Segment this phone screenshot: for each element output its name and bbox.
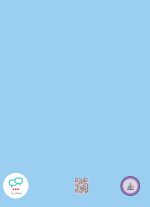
button[interactable]: Chat service	[3, 173, 29, 198]
staticText: شعارنا	[11, 190, 21, 195]
button[interactable]: Official seal	[120, 176, 140, 196]
button[interactable]: QR code	[75, 178, 88, 194]
